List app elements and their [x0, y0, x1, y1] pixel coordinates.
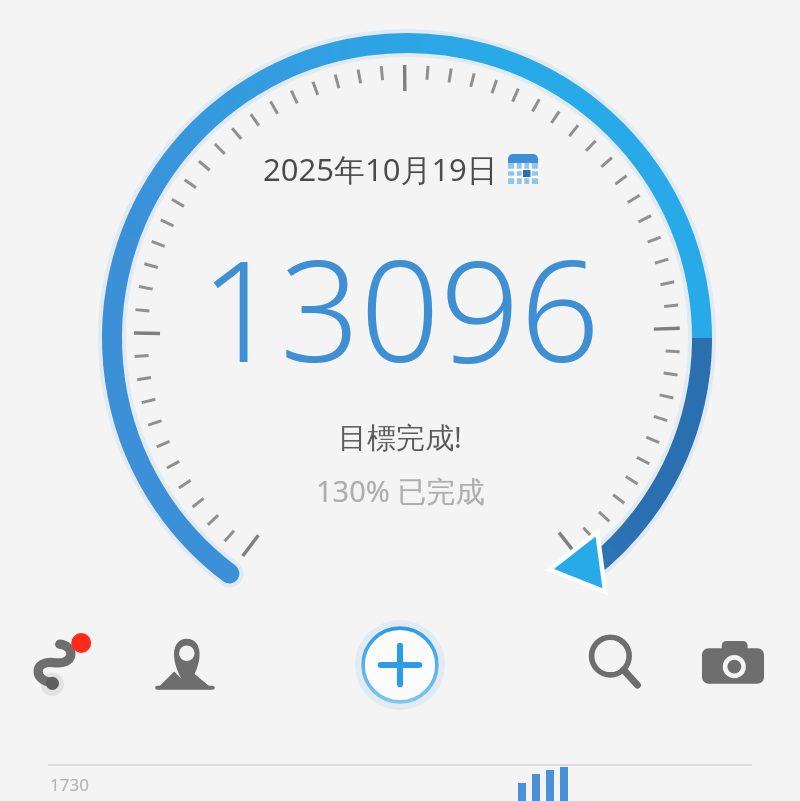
- staticText: 13096: [200, 212, 600, 403]
- staticText: 2025年10月19日: [263, 148, 498, 190]
- button[interactable]: Add: [348, 613, 452, 717]
- button[interactable]: Search: [582, 629, 648, 695]
- staticText: 1730: [50, 773, 89, 796]
- staticText: 130% 已完成: [316, 471, 485, 511]
- staticText: 目標完成!: [338, 417, 462, 457]
- button[interactable]: Camera: [700, 631, 766, 697]
- button[interactable]: Routes: [26, 625, 106, 705]
- button[interactable]: Map: [152, 627, 226, 701]
